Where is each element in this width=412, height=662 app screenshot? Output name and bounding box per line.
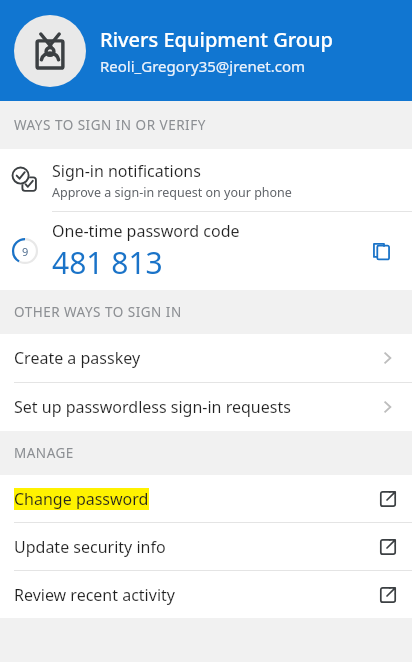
button[interactable]: Create a passkey (0, 334, 412, 382)
staticText: 9 (22, 244, 29, 259)
staticText: Rivers Equipment Group (100, 26, 333, 53)
staticText: OTHER WAYS TO SIGN IN (14, 303, 182, 321)
staticText: Set up passwordless sign-in requests (14, 396, 291, 418)
button[interactable]: Rivers Equipment Group (0, 0, 412, 101)
button[interactable]: Update security info (0, 523, 412, 570)
staticText: Create a passkey (14, 347, 141, 369)
button[interactable]: Review recent activity (0, 571, 412, 618)
staticText: One-time password code (52, 220, 240, 242)
staticText: Review recent activity (14, 584, 175, 606)
button[interactable]: Copy code (364, 234, 398, 268)
button[interactable]: Change password (0, 475, 412, 522)
button[interactable]: Sign-in notifications (0, 149, 412, 211)
button[interactable]: Set up passwordless sign-in requests (0, 383, 412, 431)
staticText: Reoli_Gregory35@jrenet.com (100, 56, 306, 76)
staticText: Change password (14, 488, 149, 510)
staticText: Approve a sign-in request on your phone (52, 184, 292, 201)
staticText: Sign-in notifications (52, 160, 201, 182)
staticText: MANAGE (14, 444, 74, 462)
button[interactable]: 9 (0, 212, 412, 290)
staticText: WAYS TO SIGN IN OR VERIFY (14, 116, 206, 134)
staticText: 481 813 (52, 242, 163, 283)
staticText: Update security info (14, 536, 166, 558)
